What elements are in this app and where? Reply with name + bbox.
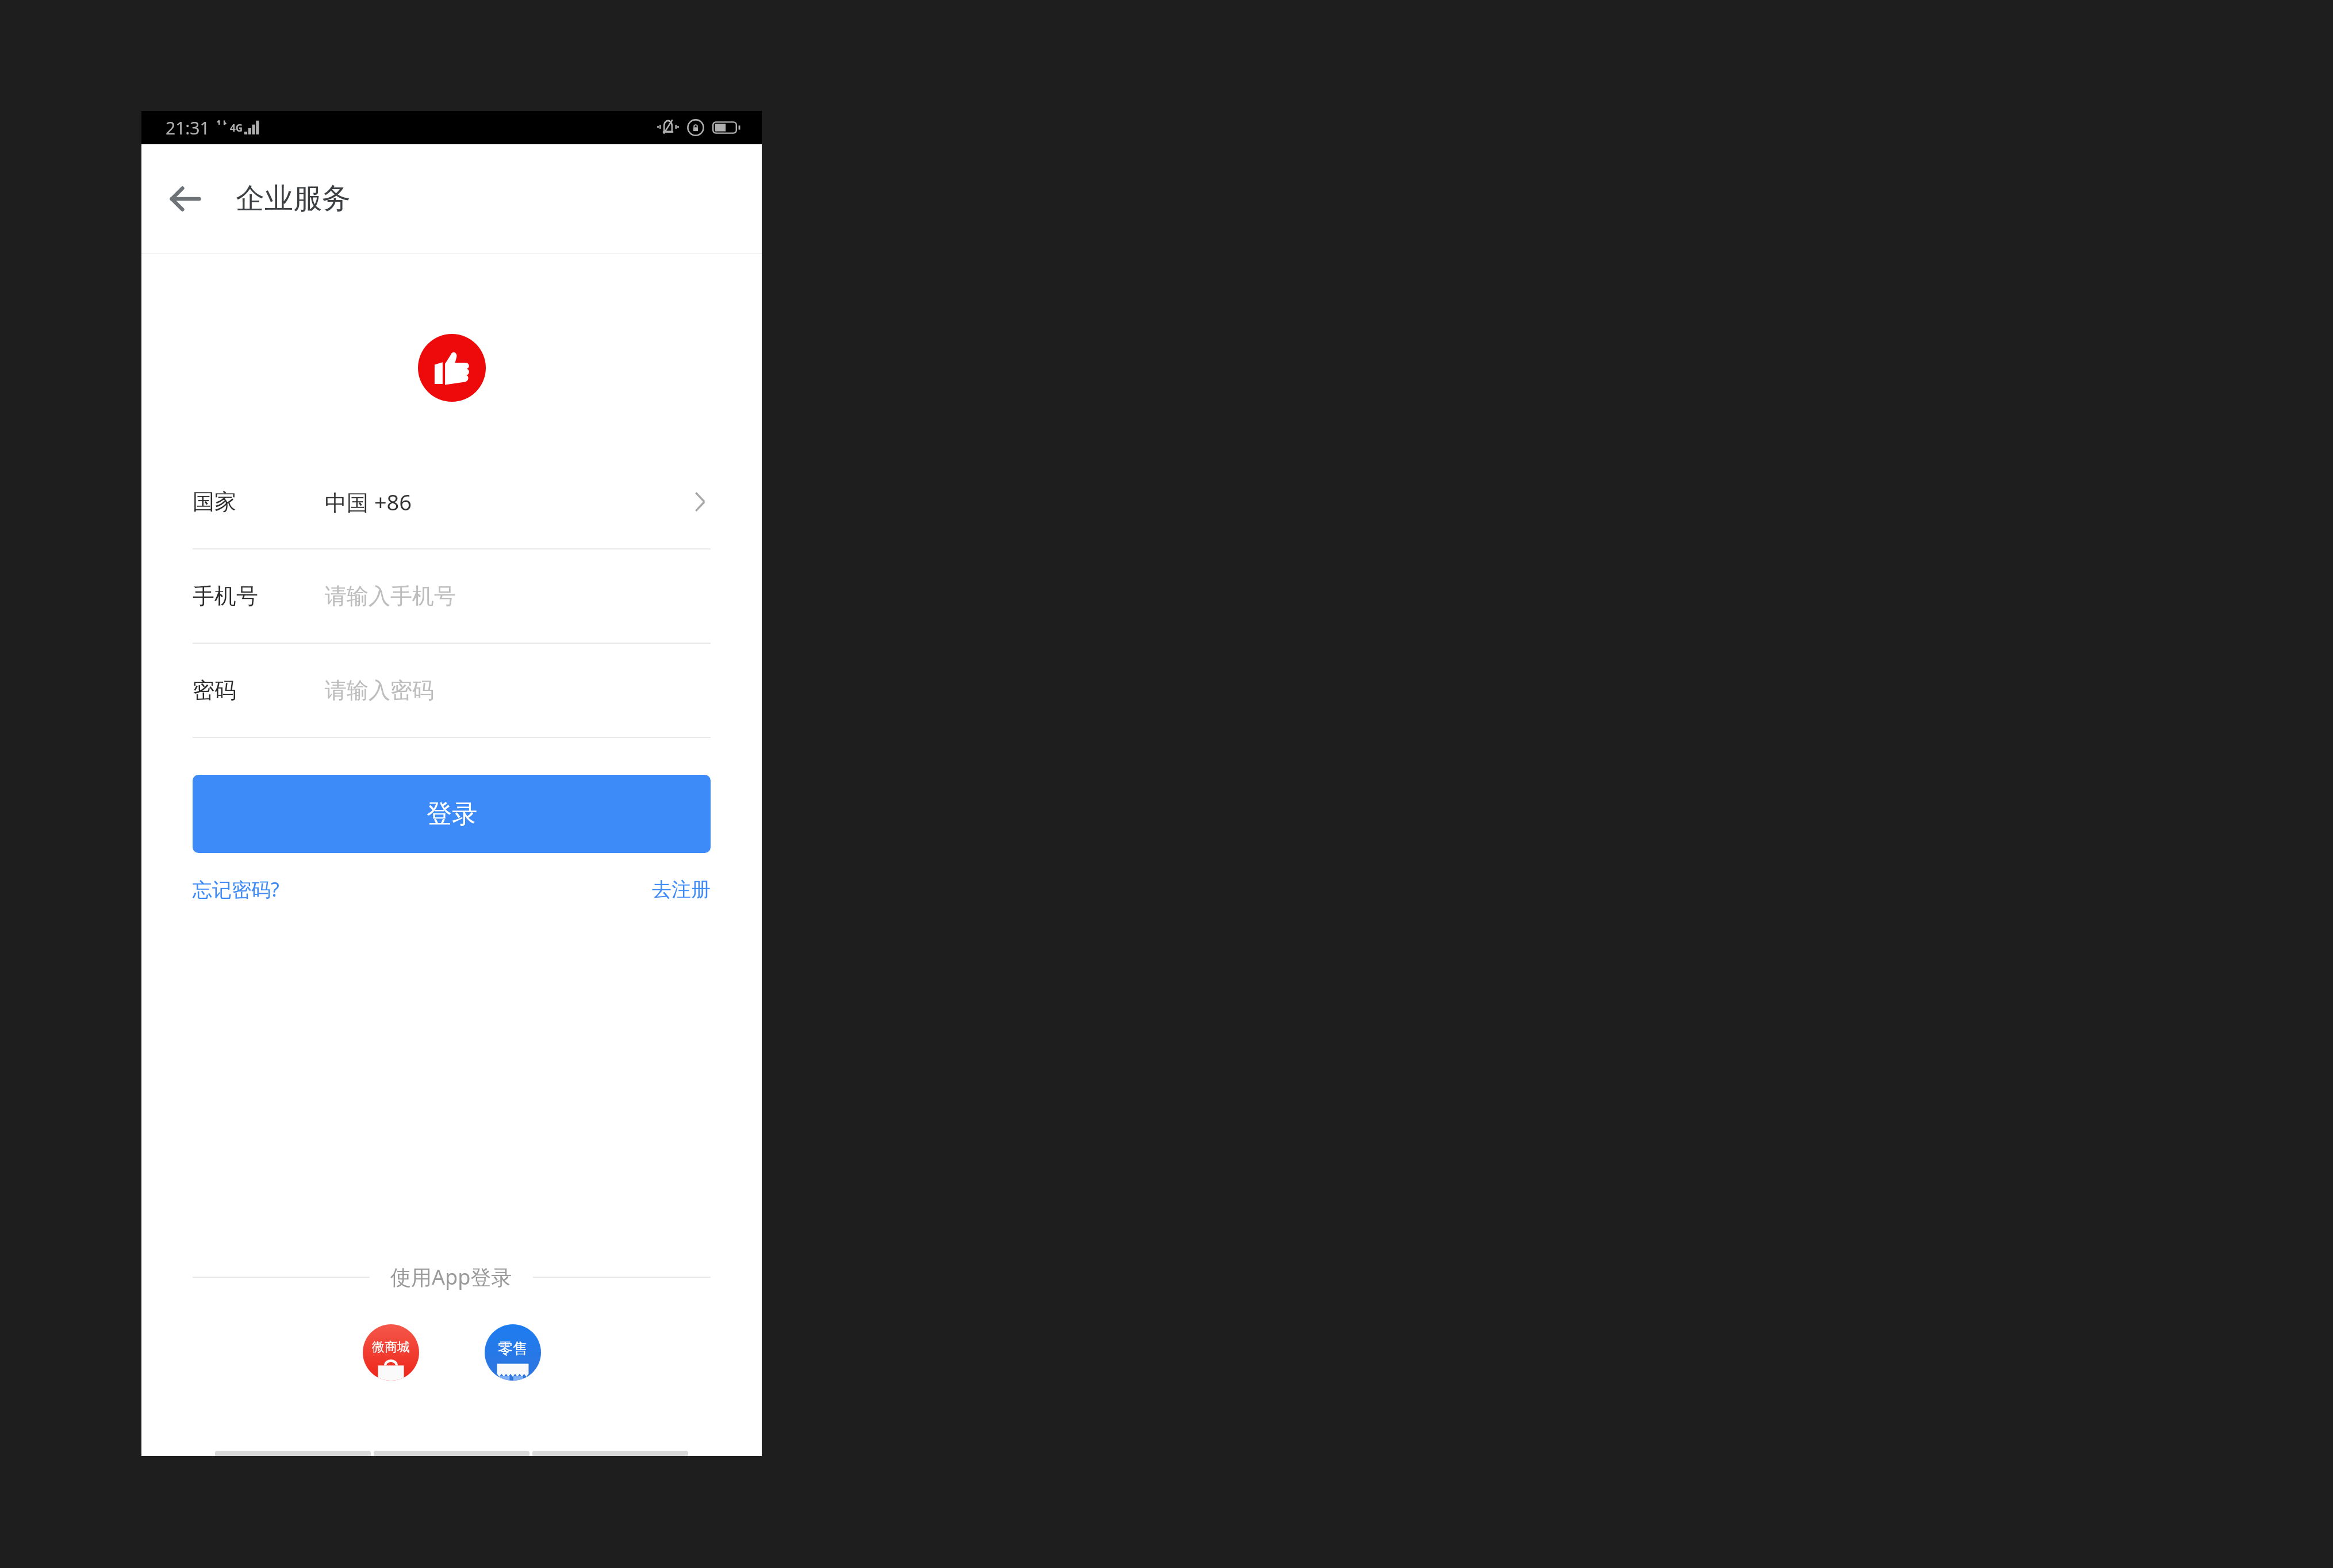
staticText: 忘记密码? (193, 876, 279, 902)
button[interactable]: 国家 (193, 455, 711, 548)
button[interactable]: Back (158, 171, 213, 226)
button[interactable]: 零售 (485, 1324, 541, 1381)
staticText: 登录 (427, 798, 477, 830)
staticText: 微商城 (372, 1339, 410, 1355)
staticText: 零售 (498, 1339, 528, 1358)
button[interactable]: 微商城 (363, 1324, 419, 1381)
staticText: 密码 (193, 677, 325, 704)
button[interactable]: 密码 (193, 644, 711, 737)
button[interactable]: 登录 (193, 775, 711, 853)
staticText: 去注册 (652, 877, 711, 902)
staticText: 请输入密码 (325, 677, 434, 704)
staticText: 企业服务 (236, 180, 351, 217)
staticText: 手机号 (193, 582, 325, 610)
button[interactable]: 忘记密码? (193, 876, 279, 902)
button[interactable]: 手机号 (193, 549, 711, 643)
staticText: 4G (230, 121, 243, 134)
staticText: 请输入手机号 (325, 582, 456, 610)
staticText: 中国 +86 (325, 487, 412, 517)
staticText: 使用App登录 (390, 1263, 512, 1291)
button[interactable]: 去注册 (652, 877, 711, 902)
staticText: 国家 (193, 488, 325, 516)
staticText: 21:31 (166, 116, 210, 140)
